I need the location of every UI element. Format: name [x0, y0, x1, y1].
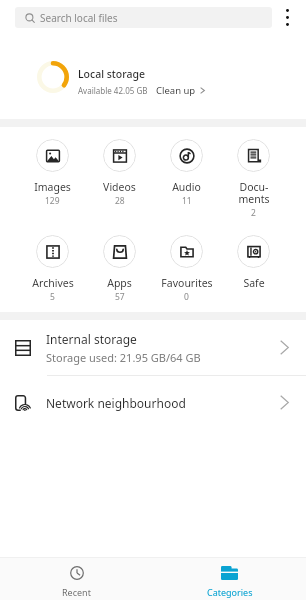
button[interactable]: Videos — [86, 139, 153, 207]
button[interactable]: Docu- ments — [220, 139, 287, 219]
staticText: Local storage — [78, 67, 146, 81]
button[interactable]: Network neighbourhood — [0, 376, 306, 429]
staticText: Docu- ments — [238, 180, 270, 206]
staticText: Search local files — [40, 11, 118, 25]
staticText: Favourites — [161, 276, 213, 290]
button[interactable]: Audio — [153, 139, 220, 207]
staticText: Categories — [207, 586, 253, 598]
button[interactable]: Local storage — [0, 35, 306, 119]
staticText: 2 — [251, 207, 256, 219]
button[interactable]: Apps — [86, 235, 153, 303]
staticText: Safe — [243, 276, 265, 290]
button[interactable]: Internal storage — [0, 320, 306, 375]
button[interactable]: Categories — [153, 560, 306, 598]
staticText: Clean up — [156, 84, 196, 97]
button[interactable]: More options — [275, 5, 300, 30]
staticText: Available 42.05 GB — [78, 85, 148, 96]
button[interactable]: Search local files — [15, 7, 272, 28]
staticText: Recent — [62, 586, 91, 598]
staticText: 57 — [115, 291, 125, 303]
staticText: Archives — [32, 276, 74, 290]
staticText: Internal storage — [46, 331, 137, 347]
button[interactable]: Recent — [0, 560, 153, 598]
staticText: Apps — [107, 276, 132, 290]
staticText: 28 — [115, 195, 125, 207]
staticText: 129 — [45, 195, 60, 207]
staticText: Audio — [172, 180, 201, 194]
staticText: 5 — [50, 291, 55, 303]
button[interactable]: Safe — [220, 235, 287, 291]
button[interactable]: Favourites — [153, 235, 220, 303]
button[interactable]: Images — [19, 139, 86, 207]
staticText: 0 — [184, 291, 189, 303]
staticText: Images — [34, 180, 71, 194]
staticText: Storage used: 21.95 GB/64 GB — [46, 350, 201, 365]
staticText: Network neighbourhood — [46, 395, 280, 411]
button[interactable]: Archives — [19, 235, 86, 303]
staticText: Videos — [103, 180, 136, 194]
staticText: 11 — [182, 195, 192, 207]
